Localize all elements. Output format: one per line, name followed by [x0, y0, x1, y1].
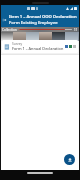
- button[interactable]: Home: [27, 172, 53, 174]
- staticText: Item 1 – Annual OOO Declaration: [9, 14, 77, 20]
- staticText: Form Existing Employee Director...: [9, 20, 77, 26]
- staticText: Form 1 – Annual Declaration: [12, 46, 64, 51]
- staticText: 11: [74, 28, 78, 32]
- button[interactable]: Back: [0, 12, 80, 27]
- staticText: Collection: [2, 28, 17, 32]
- other: Document: [4, 44, 10, 50]
- other: Back: [2, 17, 8, 23]
- button[interactable]: Document: [2, 40, 78, 53]
- button[interactable]: Add: [64, 154, 75, 165]
- staticText: Survey: [12, 42, 23, 46]
